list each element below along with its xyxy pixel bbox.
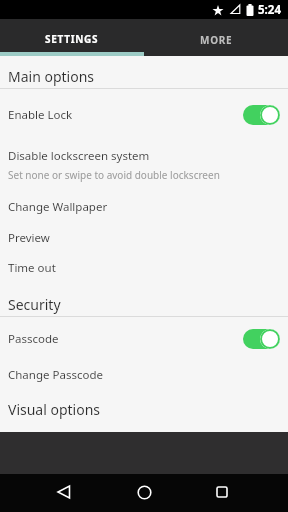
- staticText: Visual options: [8, 400, 101, 419]
- button[interactable]: MORE: [144, 24, 288, 56]
- button[interactable]: [243, 329, 280, 349]
- staticText: Main options: [8, 67, 95, 86]
- button[interactable]: Change Wallpaper: [0, 190, 288, 223]
- staticText: Change Passcode: [8, 367, 103, 383]
- button[interactable]: Disable lockscreen system: [0, 140, 288, 190]
- staticText: MORE: [200, 33, 233, 47]
- staticText: Change Wallpaper: [8, 199, 108, 215]
- button[interactable]: [57, 485, 71, 499]
- staticText: Preview: [8, 230, 50, 246]
- staticText: Disable lockscreen system: [8, 148, 150, 164]
- button[interactable]: [243, 105, 280, 125]
- staticText: Passcode: [8, 331, 59, 347]
- button[interactable]: [216, 486, 228, 498]
- button[interactable]: Passcode: [0, 317, 288, 360]
- staticText: Security: [8, 295, 61, 314]
- button[interactable]: Change Passcode: [0, 360, 288, 390]
- staticText: Set none or swipe to avoid double locksc…: [8, 168, 220, 182]
- button[interactable]: Preview: [0, 223, 288, 253]
- staticText: Time out: [8, 260, 56, 276]
- button[interactable]: Enable Lock: [0, 89, 288, 140]
- button[interactable]: SETTINGS: [0, 19, 144, 56]
- staticText: Enable Lock: [8, 107, 73, 123]
- button[interactable]: Time out: [0, 253, 288, 283]
- button[interactable]: [137, 485, 152, 500]
- staticText: 5:24: [258, 2, 281, 18]
- staticText: SETTINGS: [45, 32, 99, 46]
- button[interactable]: Visual options: [0, 390, 288, 432]
